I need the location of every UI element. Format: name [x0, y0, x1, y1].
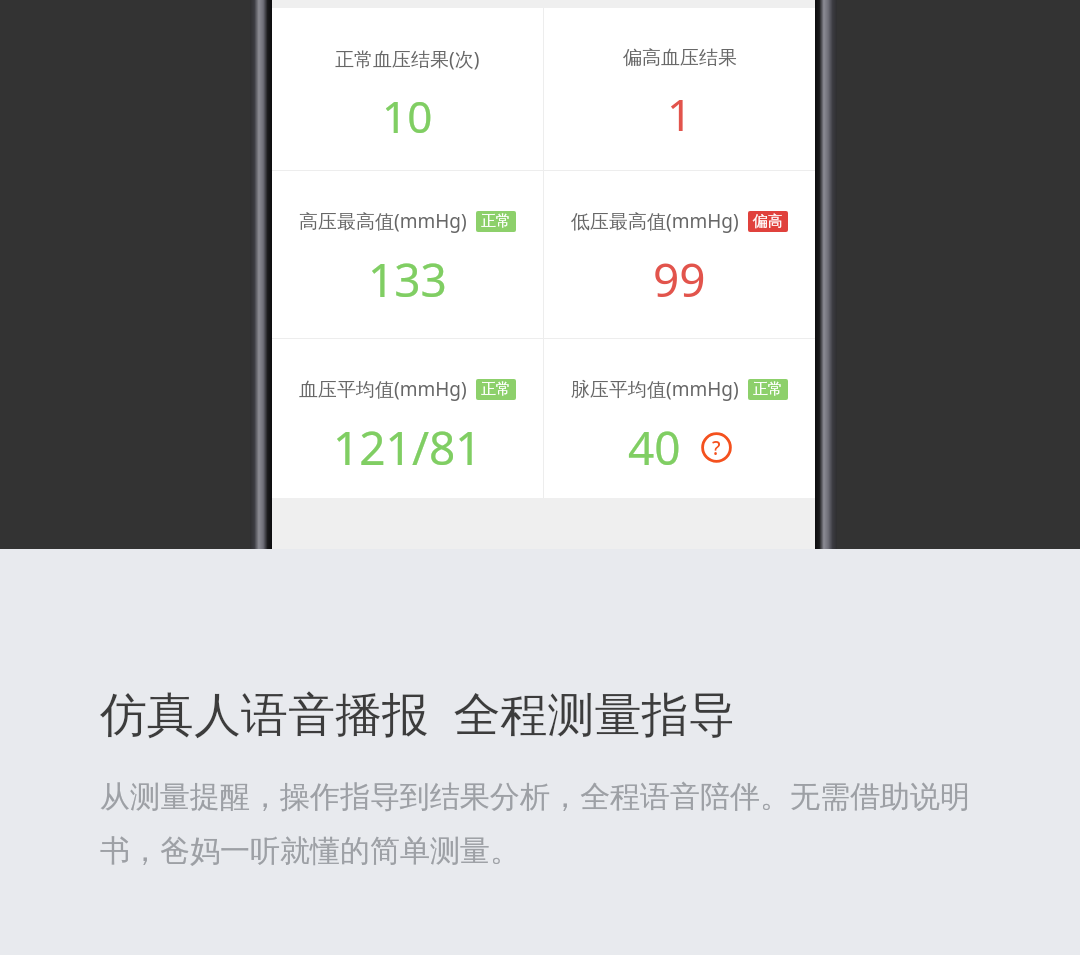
button[interactable]: 偏高血压结果 [544, 8, 815, 170]
button[interactable]: 血压平均值(mmHg) [272, 339, 543, 498]
staticText: 高压最高值(mmHg) [299, 208, 467, 234]
button[interactable]: 高压最高值(mmHg) [272, 171, 543, 338]
staticText: 脉压平均值(mmHg) [571, 376, 739, 402]
button[interactable]: 正常血压结果(次) [272, 8, 543, 170]
staticText: 1 [667, 84, 693, 144]
staticText: 正常 [481, 380, 511, 399]
staticText: 正常血压结果(次) [335, 46, 480, 72]
staticText: 偏高血压结果 [623, 46, 737, 70]
staticText: 从测量提醒，操作指导到结果分析，全程语音陪伴。无需借助说明书，爸妈一听就懂的简单… [100, 778, 1000, 870]
staticText: 血压平均值(mmHg) [299, 376, 467, 402]
staticText: 偏高 [753, 212, 783, 231]
button[interactable]: 脉压平均值(mmHg) [544, 339, 815, 498]
staticText: 40 [628, 416, 681, 479]
staticText: 低压最高值(mmHg) [571, 208, 739, 234]
staticText: 正常 [481, 212, 511, 231]
staticText: 121/81 [333, 416, 482, 479]
staticText: 10 [382, 86, 433, 146]
staticText: 99 [653, 248, 706, 311]
staticText: ? [712, 435, 721, 461]
button[interactable]: Help, what is pulse pressure [701, 432, 732, 463]
button[interactable]: 低压最高值(mmHg) [544, 171, 815, 338]
staticText: 133 [368, 248, 447, 311]
staticText: 仿真人语音播报 全程测量指导 [100, 681, 736, 745]
staticText: 正常 [753, 380, 783, 399]
